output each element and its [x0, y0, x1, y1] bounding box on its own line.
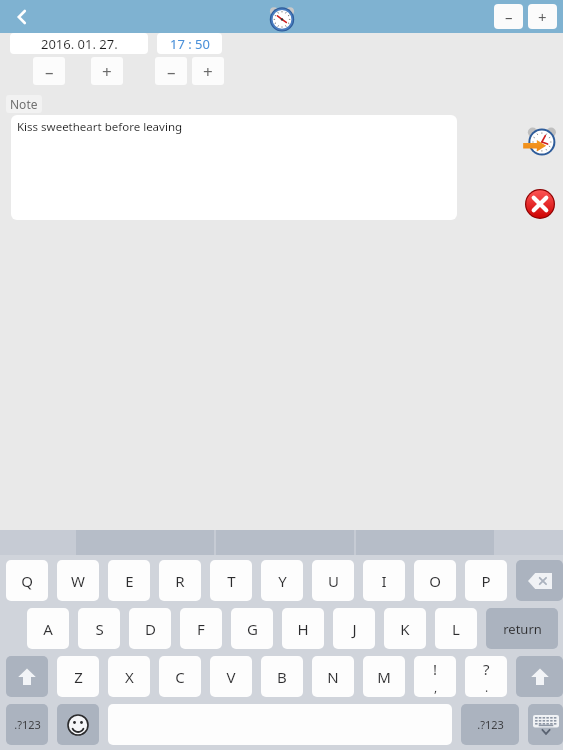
button[interactable]: Set alarm [521, 124, 557, 160]
staticText: B [277, 667, 287, 687]
staticText: U [328, 571, 339, 591]
staticText: ? [483, 659, 490, 679]
staticText: T [227, 571, 236, 591]
staticText: .?123 [14, 717, 41, 732]
button[interactable]: – [494, 4, 523, 29]
staticText: 2016. 01. 27. [41, 35, 118, 53]
staticText: – [45, 60, 54, 83]
button[interactable]: Y [261, 560, 303, 601]
button[interactable]: N [312, 656, 354, 697]
staticText: – [167, 60, 176, 83]
button[interactable]: .?123 [6, 704, 48, 745]
button[interactable]: return [486, 608, 558, 649]
staticText: K [400, 619, 410, 639]
staticText: M [377, 667, 391, 687]
staticText: A [43, 619, 53, 639]
staticText: N [327, 667, 339, 687]
staticText: L [452, 619, 460, 639]
button[interactable]: T [210, 560, 252, 601]
staticText: + [203, 60, 213, 83]
button[interactable]: W [57, 560, 99, 601]
staticText: 17 : 50 [170, 35, 210, 53]
button[interactable]: P [465, 560, 507, 601]
button[interactable]: K [384, 608, 426, 649]
button[interactable]: Backspace [516, 560, 563, 601]
button[interactable]: D [129, 608, 171, 649]
button[interactable]: ! [414, 656, 456, 697]
button[interactable]: + [91, 57, 123, 85]
button[interactable]: H [282, 608, 324, 649]
staticText: return [503, 620, 542, 638]
staticText: ! [433, 659, 438, 679]
button[interactable]: F [180, 608, 222, 649]
button[interactable]: J [333, 608, 375, 649]
staticText: – [505, 7, 513, 27]
button[interactable]: Q [6, 560, 48, 601]
button[interactable]: E [108, 560, 150, 601]
staticText: G [247, 619, 258, 639]
staticText: E [125, 571, 134, 591]
button[interactable]: .?123 [461, 704, 519, 745]
staticText: I [381, 571, 387, 591]
staticText: P [481, 571, 491, 591]
staticText: C [175, 667, 185, 687]
staticText: J [352, 619, 357, 639]
staticText: V [226, 667, 236, 687]
staticText: Y [278, 571, 287, 591]
button[interactable]: M [363, 656, 405, 697]
button[interactable]: U [312, 560, 354, 601]
staticText: F [197, 619, 205, 639]
button[interactable]: V [210, 656, 252, 697]
button[interactable]: + [528, 4, 557, 29]
staticText: . [485, 679, 489, 695]
button[interactable]: C [159, 656, 201, 697]
staticText: H [297, 619, 309, 639]
staticText: S [95, 619, 104, 639]
staticText: Note [10, 96, 38, 112]
button[interactable]: ? [465, 656, 507, 697]
button[interactable]: Z [57, 656, 99, 697]
staticText: O [429, 571, 441, 591]
button[interactable]: Delete [525, 189, 555, 219]
staticText: + [102, 60, 112, 83]
staticText: Z [74, 667, 83, 687]
button[interactable]: G [231, 608, 273, 649]
button[interactable]: O [414, 560, 456, 601]
button[interactable]: – [155, 57, 187, 85]
staticText: + [538, 7, 547, 27]
button[interactable]: + [192, 57, 224, 85]
staticText: W [71, 571, 85, 591]
button[interactable]: Kiss sweetheart before leaving [11, 115, 457, 220]
staticText: , [434, 679, 438, 695]
staticText: .?123 [477, 717, 504, 732]
button[interactable]: R [159, 560, 201, 601]
staticText: R [175, 571, 185, 591]
staticText: Kiss sweetheart before leaving [17, 119, 183, 135]
button[interactable]: X [108, 656, 150, 697]
button[interactable]: L [435, 608, 477, 649]
staticText: X [125, 667, 134, 687]
button[interactable]: A [27, 608, 69, 649]
button[interactable]: Shift [6, 656, 48, 697]
staticText: Q [21, 571, 33, 591]
button[interactable]: Hide keyboard [528, 704, 563, 745]
button[interactable]: Back [0, 0, 44, 33]
button[interactable]: 2016. 01. 27. [10, 33, 148, 54]
button[interactable]: S [78, 608, 120, 649]
button[interactable]: Emoji [57, 704, 99, 745]
button[interactable]: Shift [516, 656, 563, 697]
staticText: D [145, 619, 156, 639]
button[interactable]: – [33, 57, 65, 85]
button[interactable]: I [363, 560, 405, 601]
button[interactable]: 17 : 50 [157, 33, 222, 54]
button[interactable]: B [261, 656, 303, 697]
